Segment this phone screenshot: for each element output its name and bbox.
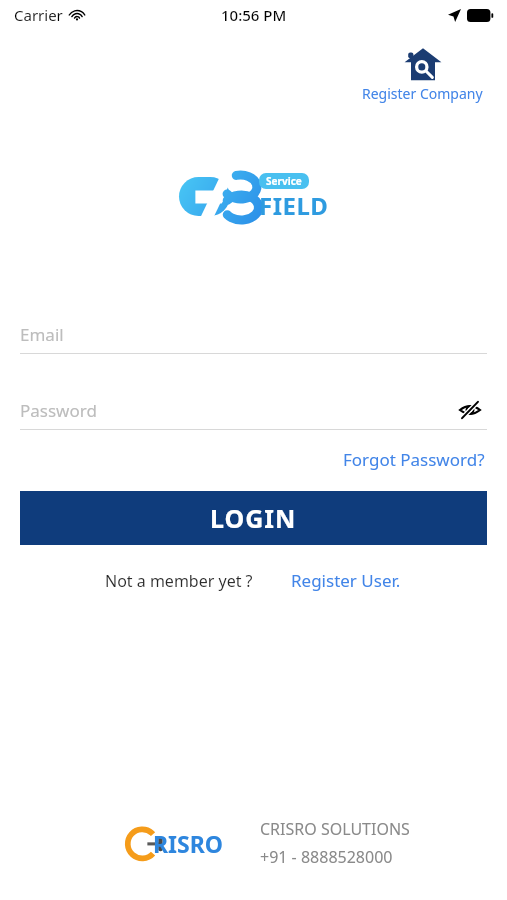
staticText: Password	[20, 399, 97, 422]
button[interactable]: Forgot Password?	[341, 446, 487, 473]
other: Register Company	[403, 46, 443, 82]
staticText: Carrier	[14, 5, 63, 25]
button[interactable]: Password	[20, 391, 487, 429]
button[interactable]: Register Company	[358, 44, 487, 105]
staticText: LOGIN	[210, 501, 297, 535]
button[interactable]: Show password	[453, 393, 487, 427]
staticText: Register User.	[291, 569, 401, 592]
staticText: Service	[266, 174, 302, 188]
button[interactable]: Register User.	[289, 567, 403, 594]
staticText: Email	[20, 323, 64, 346]
button[interactable]: LOGIN	[20, 491, 487, 545]
staticText: +91 - 8888528000	[260, 846, 393, 868]
staticText: FIELD	[259, 189, 329, 222]
staticText: Register Company	[362, 84, 483, 103]
staticText: 10:56 PM	[221, 5, 287, 25]
staticText: Not a member yet ?	[105, 570, 253, 592]
staticText: Forgot Password?	[343, 448, 485, 471]
staticText: CRISRO SOLUTIONS	[260, 818, 410, 840]
button[interactable]: Email	[20, 315, 487, 353]
staticText: RISRO	[153, 828, 223, 859]
